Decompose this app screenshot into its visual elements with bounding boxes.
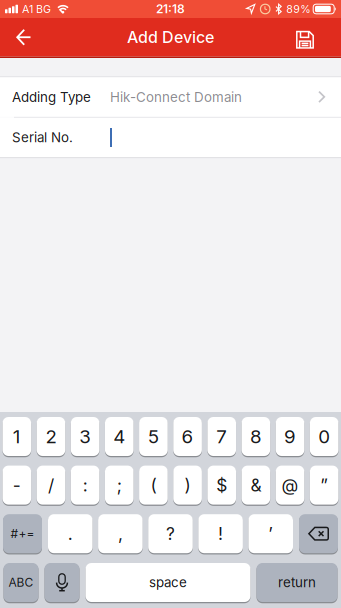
button[interactable]: Dictate [44, 563, 79, 603]
staticText: 21:18 [156, 2, 185, 16]
button[interactable]: Delete [299, 514, 338, 554]
staticText: , [118, 523, 123, 544]
staticText: space [149, 575, 187, 590]
staticText: 1 [13, 425, 21, 447]
staticText: A1 BG [22, 3, 51, 15]
staticText: 0 [318, 425, 330, 447]
button[interactable]: 6 [173, 417, 202, 457]
staticText: Serial No. [12, 130, 73, 145]
staticText: 7 [216, 425, 227, 447]
button[interactable]: 2 [37, 417, 65, 457]
staticText: & [250, 475, 261, 495]
staticText: ) [185, 475, 191, 495]
staticText: / [48, 475, 54, 495]
button[interactable]: ; [105, 466, 133, 506]
button[interactable]: Serial No. [0, 118, 341, 157]
staticText: Adding Type [12, 89, 91, 105]
staticText: 2 [45, 425, 56, 447]
staticText: return [278, 575, 316, 590]
button[interactable]: . [48, 514, 93, 554]
button[interactable]: Adding Type [0, 77, 341, 117]
button[interactable]: #+= [3, 514, 42, 554]
button[interactable]: - [2, 466, 31, 506]
button[interactable]: @ [276, 466, 304, 506]
staticText: 4 [113, 425, 125, 447]
staticText: 8 [250, 425, 262, 447]
button[interactable]: ’ [248, 514, 293, 554]
button[interactable]: & [242, 466, 270, 506]
staticText: . [68, 523, 73, 544]
staticText: Hik-Connect Domain [110, 89, 242, 105]
button[interactable]: 7 [207, 417, 236, 457]
staticText: 6 [182, 425, 194, 447]
button[interactable]: $ [207, 466, 236, 506]
button[interactable]: ” [310, 466, 338, 506]
staticText: ; [117, 475, 122, 495]
button[interactable]: ? [148, 514, 193, 554]
button[interactable]: ) [173, 466, 202, 506]
staticText: ” [320, 475, 328, 495]
button[interactable]: 5 [139, 417, 168, 457]
staticText: ( [150, 475, 156, 495]
button[interactable]: , [98, 514, 143, 554]
button[interactable]: 8 [242, 417, 270, 457]
button[interactable]: Save [286, 18, 341, 56]
staticText: 3 [79, 425, 91, 447]
button[interactable]: ! [198, 514, 243, 554]
button[interactable]: : [71, 466, 99, 506]
button[interactable]: return [256, 563, 337, 603]
staticText: ABC [8, 575, 33, 590]
button[interactable]: 4 [105, 417, 133, 457]
button[interactable]: / [37, 466, 65, 506]
button[interactable]: space [85, 563, 250, 603]
staticText: - [13, 475, 21, 495]
button[interactable]: 9 [276, 417, 304, 457]
staticText: 5 [148, 425, 159, 447]
button[interactable]: 1 [2, 417, 31, 457]
button[interactable]: 0 [310, 417, 338, 457]
staticText: $ [216, 475, 227, 495]
button[interactable]: ABC [3, 563, 38, 603]
staticText: @ [281, 475, 298, 495]
staticText: : [83, 475, 88, 495]
staticText: ? [166, 523, 175, 544]
button[interactable]: ( [139, 466, 168, 506]
staticText: 9 [284, 425, 296, 447]
button[interactable]: 3 [71, 417, 99, 457]
staticText: ’ [268, 523, 273, 544]
staticText: ! [218, 523, 223, 544]
staticText: #+= [10, 527, 34, 541]
staticText: 89% [286, 3, 310, 15]
button[interactable]: Back [0, 18, 41, 56]
staticText: Add Device [127, 28, 214, 47]
